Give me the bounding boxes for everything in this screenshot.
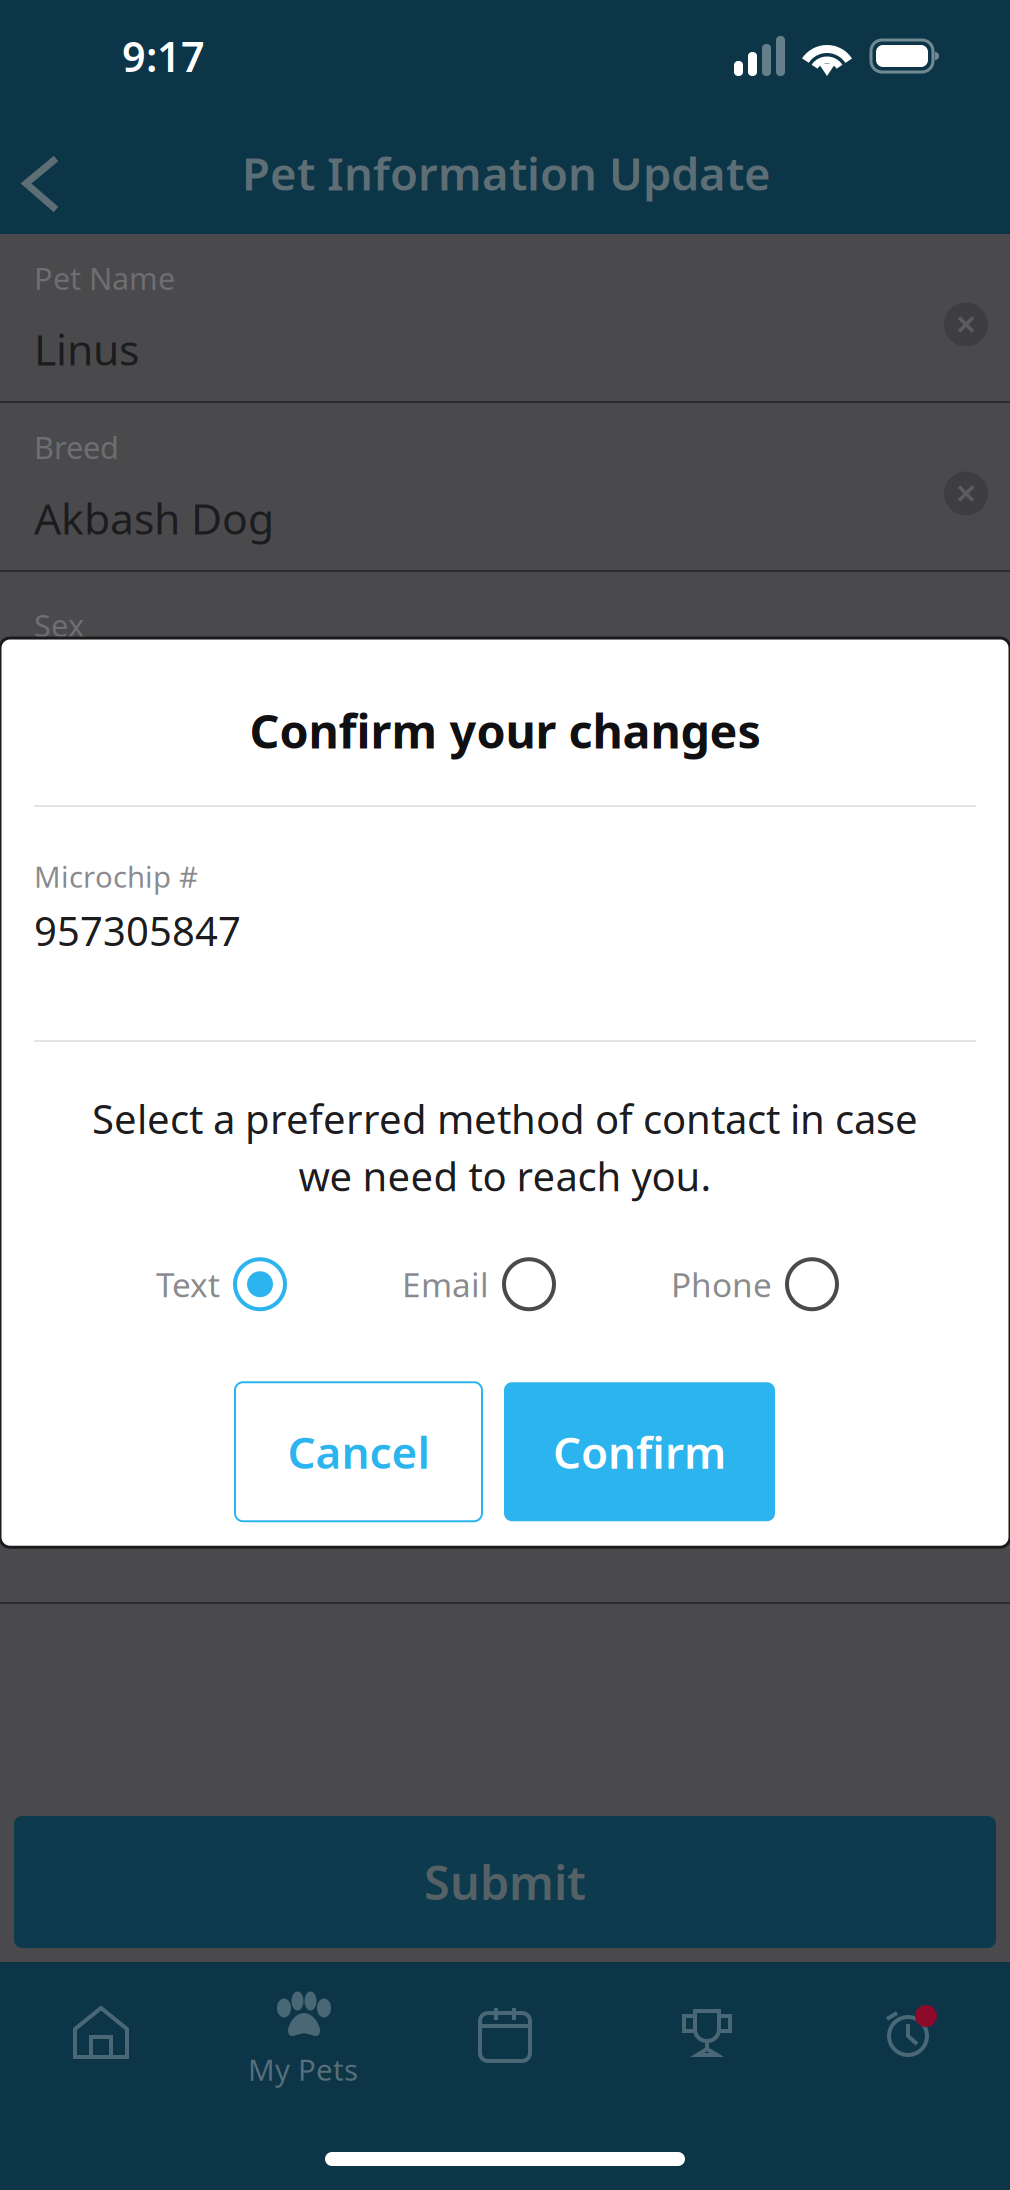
button[interactable]: Home xyxy=(0,1988,202,2064)
button[interactable]: Submit xyxy=(14,1816,996,1948)
button[interactable]: My Pets xyxy=(202,1988,404,2089)
button[interactable]: Email xyxy=(402,1258,555,1310)
staticText: Confirm your changes xyxy=(249,699,760,761)
button[interactable]: Confirm xyxy=(504,1382,775,1521)
staticText: Confirm xyxy=(553,1422,726,1481)
staticText: Pet Name xyxy=(34,258,175,298)
button[interactable]: Back xyxy=(0,123,79,222)
button[interactable]: Reminders xyxy=(808,1988,1010,2064)
staticText: Breed xyxy=(34,427,119,467)
staticText: Sex xyxy=(34,605,84,645)
button[interactable]: Phone xyxy=(671,1258,838,1310)
button[interactable]: Cancel xyxy=(235,1382,482,1521)
staticText: 9:17 xyxy=(122,29,205,83)
staticText: My Pets xyxy=(248,2050,358,2089)
staticText: 957305847 xyxy=(34,904,241,957)
staticText: Text xyxy=(156,1262,220,1306)
staticText: Linus xyxy=(34,320,139,377)
button[interactable]: Clear xyxy=(944,464,988,508)
staticText: Phone xyxy=(671,1262,772,1306)
staticText: Select a preferred method of contact in … xyxy=(92,1092,918,1145)
staticText: Submit xyxy=(424,1851,586,1913)
button[interactable]: Calendar xyxy=(404,1988,606,2064)
staticText: Microchip # xyxy=(34,857,198,896)
staticText: Pet Information Update xyxy=(242,143,771,203)
staticText: we need to reach you. xyxy=(298,1149,711,1202)
staticText: Email xyxy=(402,1262,489,1306)
button[interactable]: Awards xyxy=(606,1988,808,2064)
button[interactable]: Clear xyxy=(944,295,988,339)
staticText: Akbash Dog xyxy=(34,489,274,546)
button[interactable]: Text xyxy=(156,1258,286,1310)
staticText: Cancel xyxy=(287,1422,429,1481)
